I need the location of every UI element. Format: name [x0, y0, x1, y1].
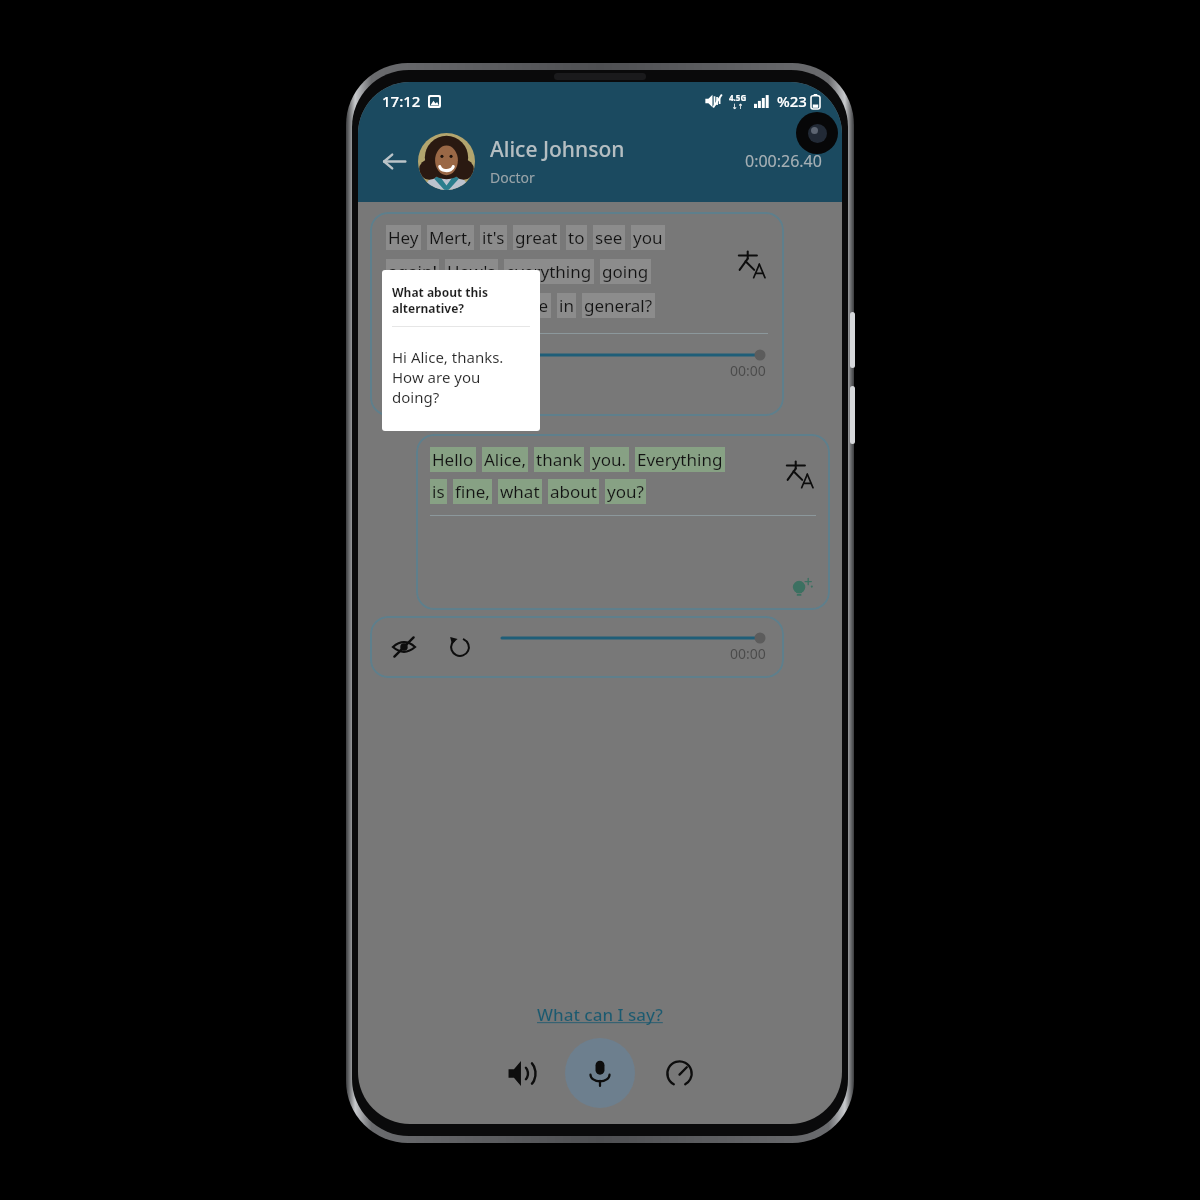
staticText: fine,: [455, 480, 490, 503]
staticText: great: [515, 226, 558, 249]
staticText: general?: [584, 294, 653, 317]
staticText: you: [633, 226, 663, 249]
staticText: 17:12: [382, 91, 421, 111]
staticText: Mert,: [429, 226, 472, 249]
staticText: Alice Johnson: [490, 135, 625, 164]
button[interactable]: Microphone: [565, 1038, 635, 1108]
staticText: 0:00:26.40: [745, 150, 822, 172]
staticText: everything: [506, 260, 592, 283]
staticText: to: [568, 226, 585, 249]
button[interactable]: Hey: [370, 212, 784, 416]
staticText: again!: [388, 260, 437, 283]
button[interactable]: Speaker: [495, 1047, 547, 1099]
button[interactable]: Translate: [782, 457, 816, 491]
staticText: it's: [482, 226, 505, 249]
staticText: you.: [592, 448, 627, 471]
button[interactable]: Replay: [442, 629, 478, 665]
button[interactable]: Back: [372, 139, 416, 183]
button[interactable]: What about this alternative?: [382, 270, 540, 431]
button[interactable]: Show text: [370, 616, 784, 678]
staticText: 4.5G: [729, 92, 747, 103]
button[interactable]: Contact photo: [418, 133, 475, 190]
staticText: Everything: [637, 448, 723, 471]
staticText: Alice,: [484, 448, 526, 471]
staticText: is: [432, 480, 445, 503]
staticText: life: [524, 294, 549, 317]
staticText: you?: [607, 480, 644, 503]
staticText: see: [595, 226, 623, 249]
staticText: what: [500, 480, 540, 503]
staticText: about: [550, 480, 597, 503]
staticText: 00:00: [730, 644, 766, 663]
staticText: ↓↑: [732, 103, 744, 111]
staticText: 00:00: [730, 361, 766, 380]
staticText: going: [602, 260, 649, 283]
staticText: What can I say?: [537, 1003, 663, 1026]
staticText: in: [559, 294, 574, 317]
staticText: Hello: [432, 448, 474, 471]
button[interactable]: Replay: [442, 346, 478, 382]
staticText: What about this alternative?: [392, 284, 530, 316]
button[interactable]: Speed: [653, 1047, 705, 1099]
button[interactable]: Translate: [734, 247, 768, 281]
staticText: with: [388, 294, 423, 317]
staticText: and: [483, 294, 514, 317]
staticText: Hi Alice, thanks. How are you doing?: [392, 347, 530, 407]
staticText: thank: [536, 448, 582, 471]
button[interactable]: Hide text: [386, 346, 422, 382]
staticText: %23: [777, 91, 807, 111]
staticText: work: [433, 294, 473, 317]
button[interactable]: Show text: [386, 629, 422, 665]
staticText: Doctor: [490, 168, 535, 187]
button[interactable]: Suggestion: [786, 574, 816, 604]
staticText: How's: [447, 260, 496, 283]
button[interactable]: Hello: [416, 434, 830, 610]
staticText: Hey: [388, 226, 419, 249]
button[interactable]: What can I say?: [527, 999, 673, 1030]
